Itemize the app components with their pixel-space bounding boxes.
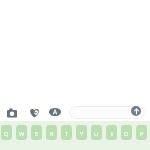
button[interactable]: E bbox=[31, 125, 42, 140]
button[interactable]: Stickers bbox=[26, 104, 42, 120]
button[interactable]: Send bbox=[131, 106, 141, 116]
button[interactable]: I bbox=[106, 125, 117, 140]
button[interactable] bbox=[69, 106, 145, 119]
button[interactable]: W bbox=[16, 125, 27, 140]
staticText: E bbox=[35, 130, 39, 138]
staticText: U bbox=[94, 130, 99, 138]
staticText: R bbox=[50, 130, 54, 138]
button[interactable]: Q bbox=[1, 125, 12, 140]
button[interactable]: T bbox=[61, 125, 72, 140]
button[interactable]: P bbox=[136, 125, 147, 140]
staticText: W bbox=[19, 130, 25, 138]
button[interactable]: R bbox=[46, 125, 57, 140]
button[interactable]: GIF bbox=[47, 104, 63, 120]
staticText: Q bbox=[4, 130, 9, 138]
staticText: I bbox=[111, 130, 113, 138]
button[interactable]: Camera bbox=[4, 105, 20, 121]
staticText: P bbox=[140, 130, 144, 138]
staticText: T bbox=[65, 130, 69, 138]
button[interactable]: O bbox=[121, 125, 132, 140]
button[interactable]: U bbox=[91, 125, 102, 140]
button[interactable]: Y bbox=[76, 125, 87, 140]
staticText: O bbox=[124, 130, 129, 138]
staticText: Y bbox=[80, 130, 84, 138]
